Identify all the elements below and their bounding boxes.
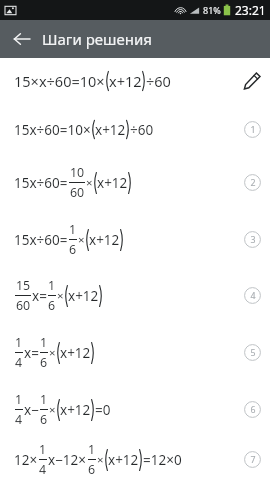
staticText: 4 [15, 411, 23, 428]
staticText: =0 [95, 401, 111, 419]
staticText: 60 [16, 297, 31, 314]
staticText: 15x÷60= [14, 174, 68, 192]
button[interactable]: 1 [0, 324, 270, 381]
staticText: × [57, 288, 64, 304]
staticText: 1 [48, 277, 56, 294]
staticText: 4 [250, 290, 256, 302]
staticText: 6 [69, 241, 77, 258]
staticText: 23:21 [235, 2, 266, 18]
staticText: 4 [39, 461, 47, 478]
staticText: x= [32, 287, 47, 305]
staticText: 2 [250, 177, 256, 189]
staticText: 1 [250, 124, 256, 136]
staticText: × [78, 232, 85, 248]
staticText: 81% [203, 4, 221, 16]
staticText: x+12 [89, 231, 120, 249]
staticText: 6 [40, 411, 48, 428]
staticText: =12×0 [143, 451, 182, 469]
button[interactable]: 15x÷60= [0, 154, 270, 211]
staticText: 6 [40, 354, 48, 371]
staticText: 5 [250, 347, 256, 359]
staticText: 1 [69, 221, 77, 238]
staticText: Шаги решения [42, 29, 152, 49]
staticText: 6 [48, 297, 56, 314]
staticText: 6 [88, 461, 96, 478]
staticText: × [49, 402, 56, 418]
staticText: 1 [39, 441, 47, 458]
staticText: × [97, 452, 104, 468]
staticText: 6 [250, 404, 256, 416]
button[interactable]: 1 [0, 381, 270, 438]
staticText: x−12× [48, 451, 87, 469]
staticText: x− [24, 401, 39, 419]
staticText: 15x÷60=10× [14, 121, 91, 139]
staticText: x+12 [95, 121, 126, 139]
staticText: × [49, 345, 56, 361]
staticText: 15×x÷60=10× [14, 71, 105, 91]
staticText: x+12 [68, 287, 99, 305]
staticText: 1 [15, 391, 23, 408]
staticText: x+12 [60, 344, 91, 362]
staticText: x+12 [108, 451, 139, 469]
staticText: 12× [14, 451, 38, 469]
staticText: x= [24, 344, 39, 362]
button[interactable]: 15×x÷60=10× [0, 58, 270, 104]
staticText: 7 [250, 454, 256, 466]
staticText: 3 [250, 234, 256, 246]
staticText: 60 [70, 184, 85, 201]
staticText: 1 [40, 334, 48, 351]
button[interactable]: 12× [0, 438, 270, 480]
button[interactable]: 15 [0, 267, 270, 324]
button[interactable]: Back [8, 25, 36, 53]
staticText: × [86, 175, 93, 191]
staticText: 15x÷60= [14, 231, 68, 249]
staticText: 1 [88, 441, 96, 458]
staticText: x+12 [109, 71, 142, 91]
staticText: x+12 [60, 401, 91, 419]
staticText: 10 [70, 164, 85, 181]
staticText: 1 [40, 391, 48, 408]
button[interactable]: 15x÷60=10× [0, 104, 270, 154]
staticText: ÷60 [130, 121, 154, 139]
button[interactable]: 15x÷60= [0, 211, 270, 267]
staticText: x+12 [97, 174, 128, 192]
staticText: ÷60 [146, 71, 171, 91]
staticText: 15 [16, 277, 31, 294]
staticText: 1 [15, 334, 23, 351]
button[interactable]: Edit equation [239, 68, 265, 94]
staticText: 4 [15, 354, 23, 371]
